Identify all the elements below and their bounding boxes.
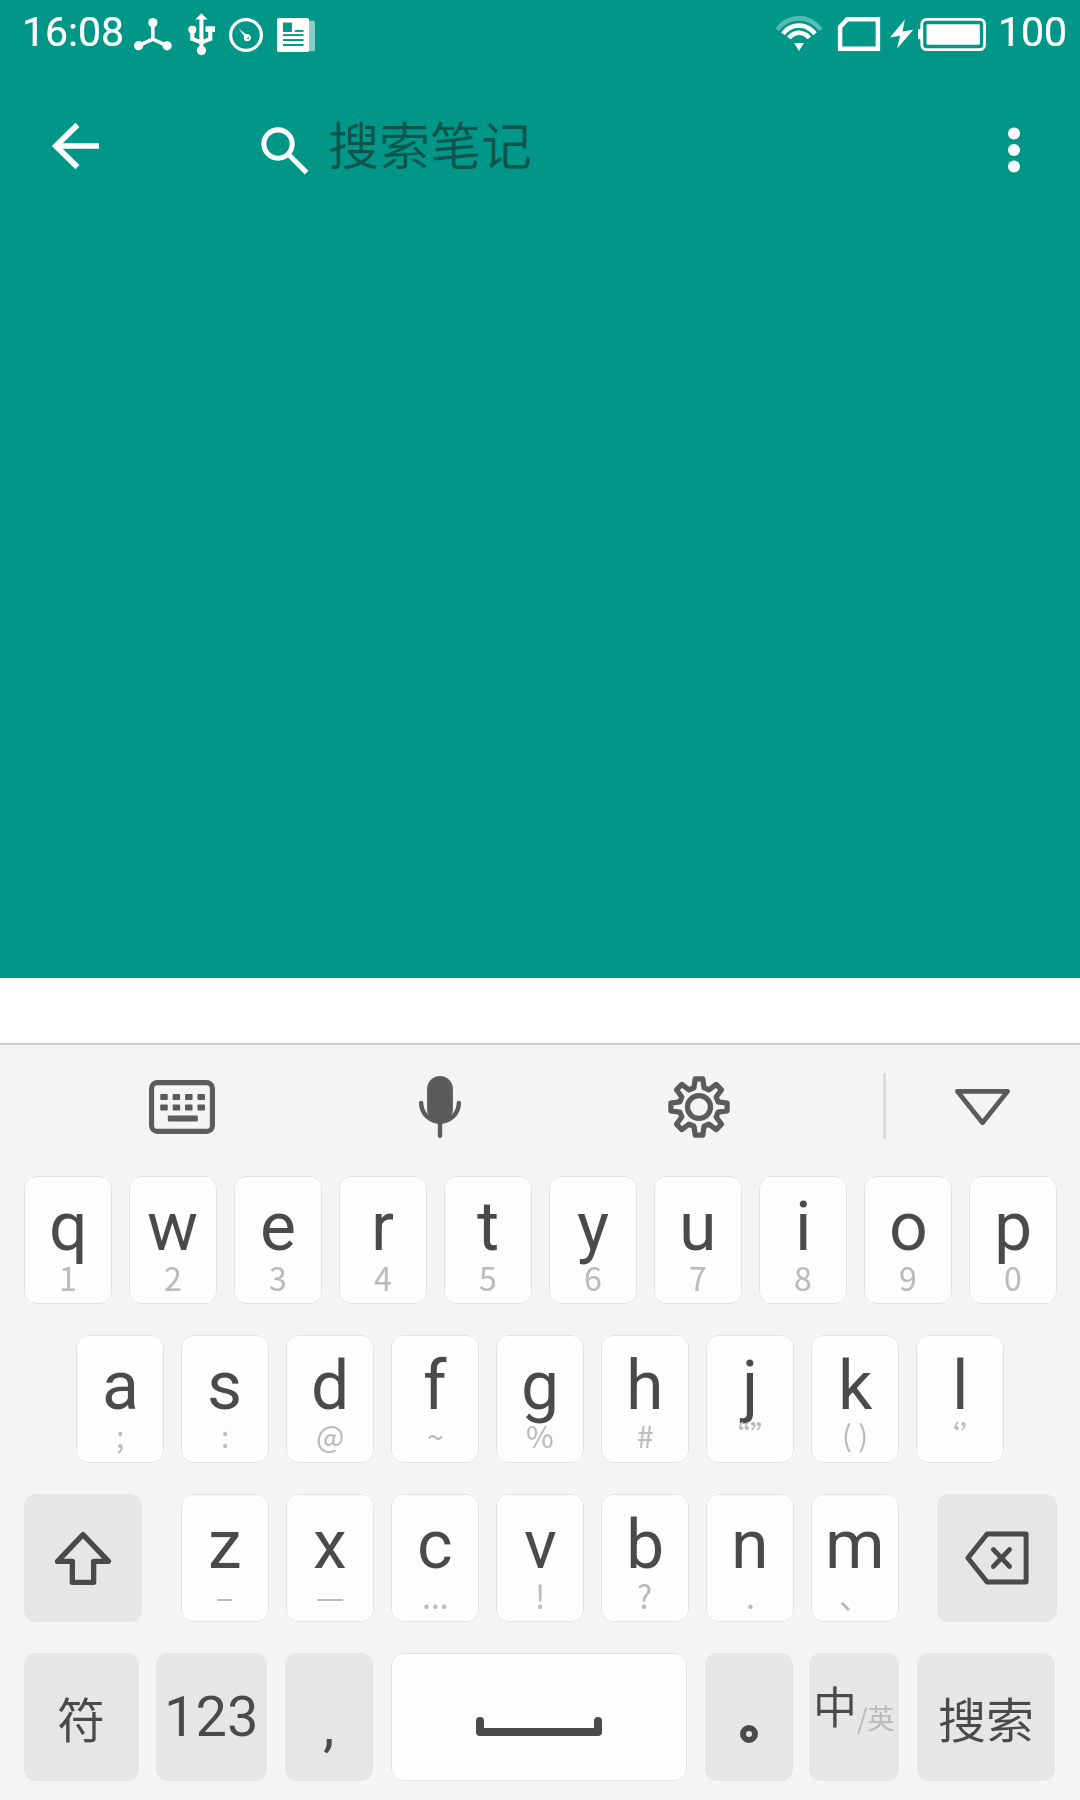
button[interactable]: f <box>391 1335 479 1463</box>
staticText: c <box>417 1505 453 1585</box>
button[interactable]: t <box>444 1176 532 1304</box>
button[interactable]: c <box>391 1494 479 1622</box>
button[interactable]: k <box>811 1335 899 1463</box>
button[interactable]: Backspace <box>937 1494 1057 1622</box>
staticText: f <box>423 1346 447 1426</box>
button[interactable]: g <box>496 1335 584 1463</box>
button[interactable]: Settings <box>659 1067 739 1147</box>
button[interactable]: r <box>339 1176 427 1304</box>
staticText: – <box>216 1572 234 1618</box>
button[interactable]: m <box>811 1494 899 1622</box>
staticText: i <box>795 1187 812 1267</box>
button[interactable]: y <box>549 1176 637 1304</box>
staticText: 搜索 <box>938 1682 1035 1752</box>
staticText: 2 <box>164 1254 182 1300</box>
button[interactable]: Hide keyboard <box>942 1067 1022 1147</box>
staticText: ? <box>637 1572 653 1618</box>
staticText: @ <box>316 1413 345 1456</box>
staticText: ( ) <box>842 1413 869 1455</box>
staticText: ... <box>422 1572 449 1618</box>
staticText: 16:08 <box>22 8 125 56</box>
button[interactable]: Back <box>29 102 125 198</box>
staticText: 7 <box>689 1254 707 1300</box>
staticText: j <box>742 1346 759 1426</box>
staticText: k <box>838 1346 873 1426</box>
staticText: 中 <box>813 1673 857 1737</box>
button[interactable]: 搜索 <box>917 1653 1055 1781</box>
button[interactable]: h <box>601 1335 689 1463</box>
staticText: ; <box>116 1413 125 1456</box>
staticText: 、 <box>839 1572 872 1618</box>
staticText: 9 <box>899 1254 917 1300</box>
staticText: n <box>731 1505 769 1585</box>
staticText: ‘’ <box>931 1413 990 1455</box>
staticText: 搜索笔记 <box>328 106 533 180</box>
button[interactable]: p <box>969 1176 1057 1304</box>
button[interactable]: , <box>285 1653 373 1781</box>
button[interactable]: u <box>654 1176 742 1304</box>
staticText: q <box>49 1187 88 1267</box>
staticText: g <box>521 1346 560 1426</box>
staticText: a <box>102 1346 139 1426</box>
staticText: “” <box>721 1413 780 1455</box>
staticText: 0 <box>1004 1254 1022 1300</box>
staticText: d <box>311 1346 350 1426</box>
button[interactable]: b <box>601 1494 689 1622</box>
button[interactable]: Switch language <box>809 1653 899 1781</box>
staticText: 3 <box>269 1254 287 1300</box>
button[interactable]: q <box>24 1176 112 1304</box>
staticText: o <box>889 1187 928 1267</box>
button[interactable]: More options <box>966 102 1062 198</box>
staticText: 100 <box>998 8 1068 56</box>
staticText: y <box>577 1187 610 1267</box>
staticText: . <box>746 1572 755 1618</box>
button[interactable]: o <box>864 1176 952 1304</box>
staticText: 5 <box>479 1254 497 1300</box>
button[interactable]: Space <box>391 1653 687 1781</box>
staticText: z <box>208 1505 242 1585</box>
button[interactable]: v <box>496 1494 584 1622</box>
staticText: : <box>221 1413 230 1456</box>
button[interactable]: l <box>916 1335 1004 1463</box>
staticText: l <box>952 1346 969 1426</box>
button[interactable]: 符 <box>24 1653 139 1781</box>
button[interactable]: j <box>706 1335 794 1463</box>
staticText: 123 <box>164 1684 259 1750</box>
staticText: h <box>626 1346 664 1426</box>
button[interactable]: Voice input <box>400 1067 480 1147</box>
staticText: % <box>526 1413 554 1456</box>
button[interactable]: w <box>129 1176 217 1304</box>
staticText: /英 <box>857 1698 895 1737</box>
staticText: , <box>323 1691 335 1759</box>
button[interactable]: Period <box>705 1653 793 1781</box>
button[interactable]: e <box>234 1176 322 1304</box>
staticText: 8 <box>794 1254 812 1300</box>
button[interactable]: x <box>286 1494 374 1622</box>
staticText: 符 <box>57 1682 106 1752</box>
staticText: t <box>477 1187 500 1267</box>
staticText: 6 <box>584 1254 602 1300</box>
staticText: ! <box>535 1572 546 1618</box>
staticText: w <box>147 1187 199 1267</box>
button[interactable]: z <box>181 1494 269 1622</box>
staticText: — <box>316 1572 345 1618</box>
staticText: e <box>260 1187 297 1267</box>
staticText: ~ <box>427 1413 444 1456</box>
button[interactable]: i <box>759 1176 847 1304</box>
button[interactable]: a <box>76 1335 164 1463</box>
staticText: x <box>313 1505 347 1585</box>
button[interactable]: d <box>286 1335 374 1463</box>
button[interactable]: Keyboard layout <box>142 1067 222 1147</box>
staticText: s <box>207 1346 243 1426</box>
staticText: m <box>825 1505 885 1585</box>
button[interactable]: s <box>181 1335 269 1463</box>
button[interactable]: n <box>706 1494 794 1622</box>
staticText: 1 <box>59 1254 77 1300</box>
staticText: p <box>994 1187 1033 1267</box>
staticText: 4 <box>374 1254 392 1300</box>
button[interactable]: 123 <box>156 1653 267 1781</box>
button[interactable]: Shift <box>24 1494 142 1622</box>
staticText: r <box>371 1187 395 1267</box>
staticText: # <box>637 1413 654 1456</box>
staticText: u <box>679 1187 717 1267</box>
